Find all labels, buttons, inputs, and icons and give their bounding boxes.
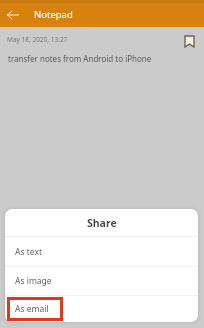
staticText: As text [15, 246, 42, 258]
button[interactable]: As image [5, 267, 198, 295]
staticText: Notepad [34, 8, 73, 21]
staticText: May 18, 2020, 13:27 [7, 35, 68, 44]
staticText: As email [15, 303, 49, 315]
staticText: transfer notes from Android to iPhone [8, 53, 152, 64]
staticText: As image [15, 275, 52, 287]
button[interactable]: As text [5, 237, 198, 266]
button[interactable]: Back [2, 4, 24, 26]
staticText: Share [87, 216, 117, 230]
button[interactable]: As email [5, 296, 198, 322]
button[interactable]: Bookmark [179, 31, 199, 51]
